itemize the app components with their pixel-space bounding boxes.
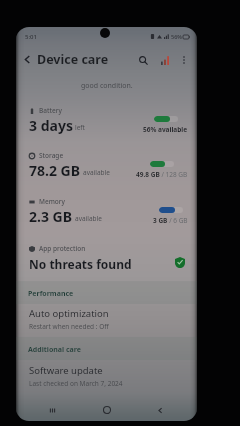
button[interactable]: Recent apps xyxy=(42,400,62,420)
staticText: Performance xyxy=(28,289,74,299)
staticText: 5:01 xyxy=(25,33,37,41)
staticText: available xyxy=(75,214,102,223)
staticText: Memory xyxy=(39,197,66,206)
staticText: 56% xyxy=(171,33,182,40)
button[interactable]: Home xyxy=(97,400,117,420)
staticText: Storage xyxy=(39,151,64,160)
button[interactable]: App protection xyxy=(16,243,197,285)
staticText: 3 days xyxy=(29,116,73,135)
staticText: Restart when needed : Off xyxy=(29,322,109,331)
button[interactable]: Navigate up xyxy=(19,51,36,68)
button[interactable]: Usage history xyxy=(156,51,174,69)
staticText: Device care xyxy=(37,51,109,68)
staticText: 3 GB / 6 GB xyxy=(153,216,188,225)
staticText: available xyxy=(83,168,110,177)
staticText: 78.2 GB xyxy=(29,161,81,180)
button[interactable]: More options xyxy=(176,52,192,68)
button[interactable]: Memory xyxy=(16,196,197,241)
button[interactable]: Software update xyxy=(16,362,197,395)
staticText: Additional care xyxy=(28,345,81,355)
button[interactable]: Storage xyxy=(16,150,197,195)
staticText: Battery xyxy=(39,106,62,115)
button[interactable]: Auto optimization xyxy=(16,305,197,338)
staticText: Auto optimization xyxy=(29,307,109,320)
staticText: No threats found xyxy=(29,256,132,272)
staticText: 2.3 GB xyxy=(29,207,73,226)
staticText: 49.8 GB / 128 GB xyxy=(136,170,188,179)
staticText: Last checked on March 7, 2024 xyxy=(29,379,123,388)
button[interactable]: Search xyxy=(134,51,152,69)
staticText: App protection xyxy=(39,244,86,253)
staticText: 56% available xyxy=(143,125,188,134)
staticText: left xyxy=(75,123,85,132)
staticText: Software update xyxy=(29,364,103,377)
button[interactable]: Battery xyxy=(16,105,197,150)
staticText: good condition. xyxy=(81,81,133,91)
button[interactable]: Back xyxy=(150,400,170,420)
